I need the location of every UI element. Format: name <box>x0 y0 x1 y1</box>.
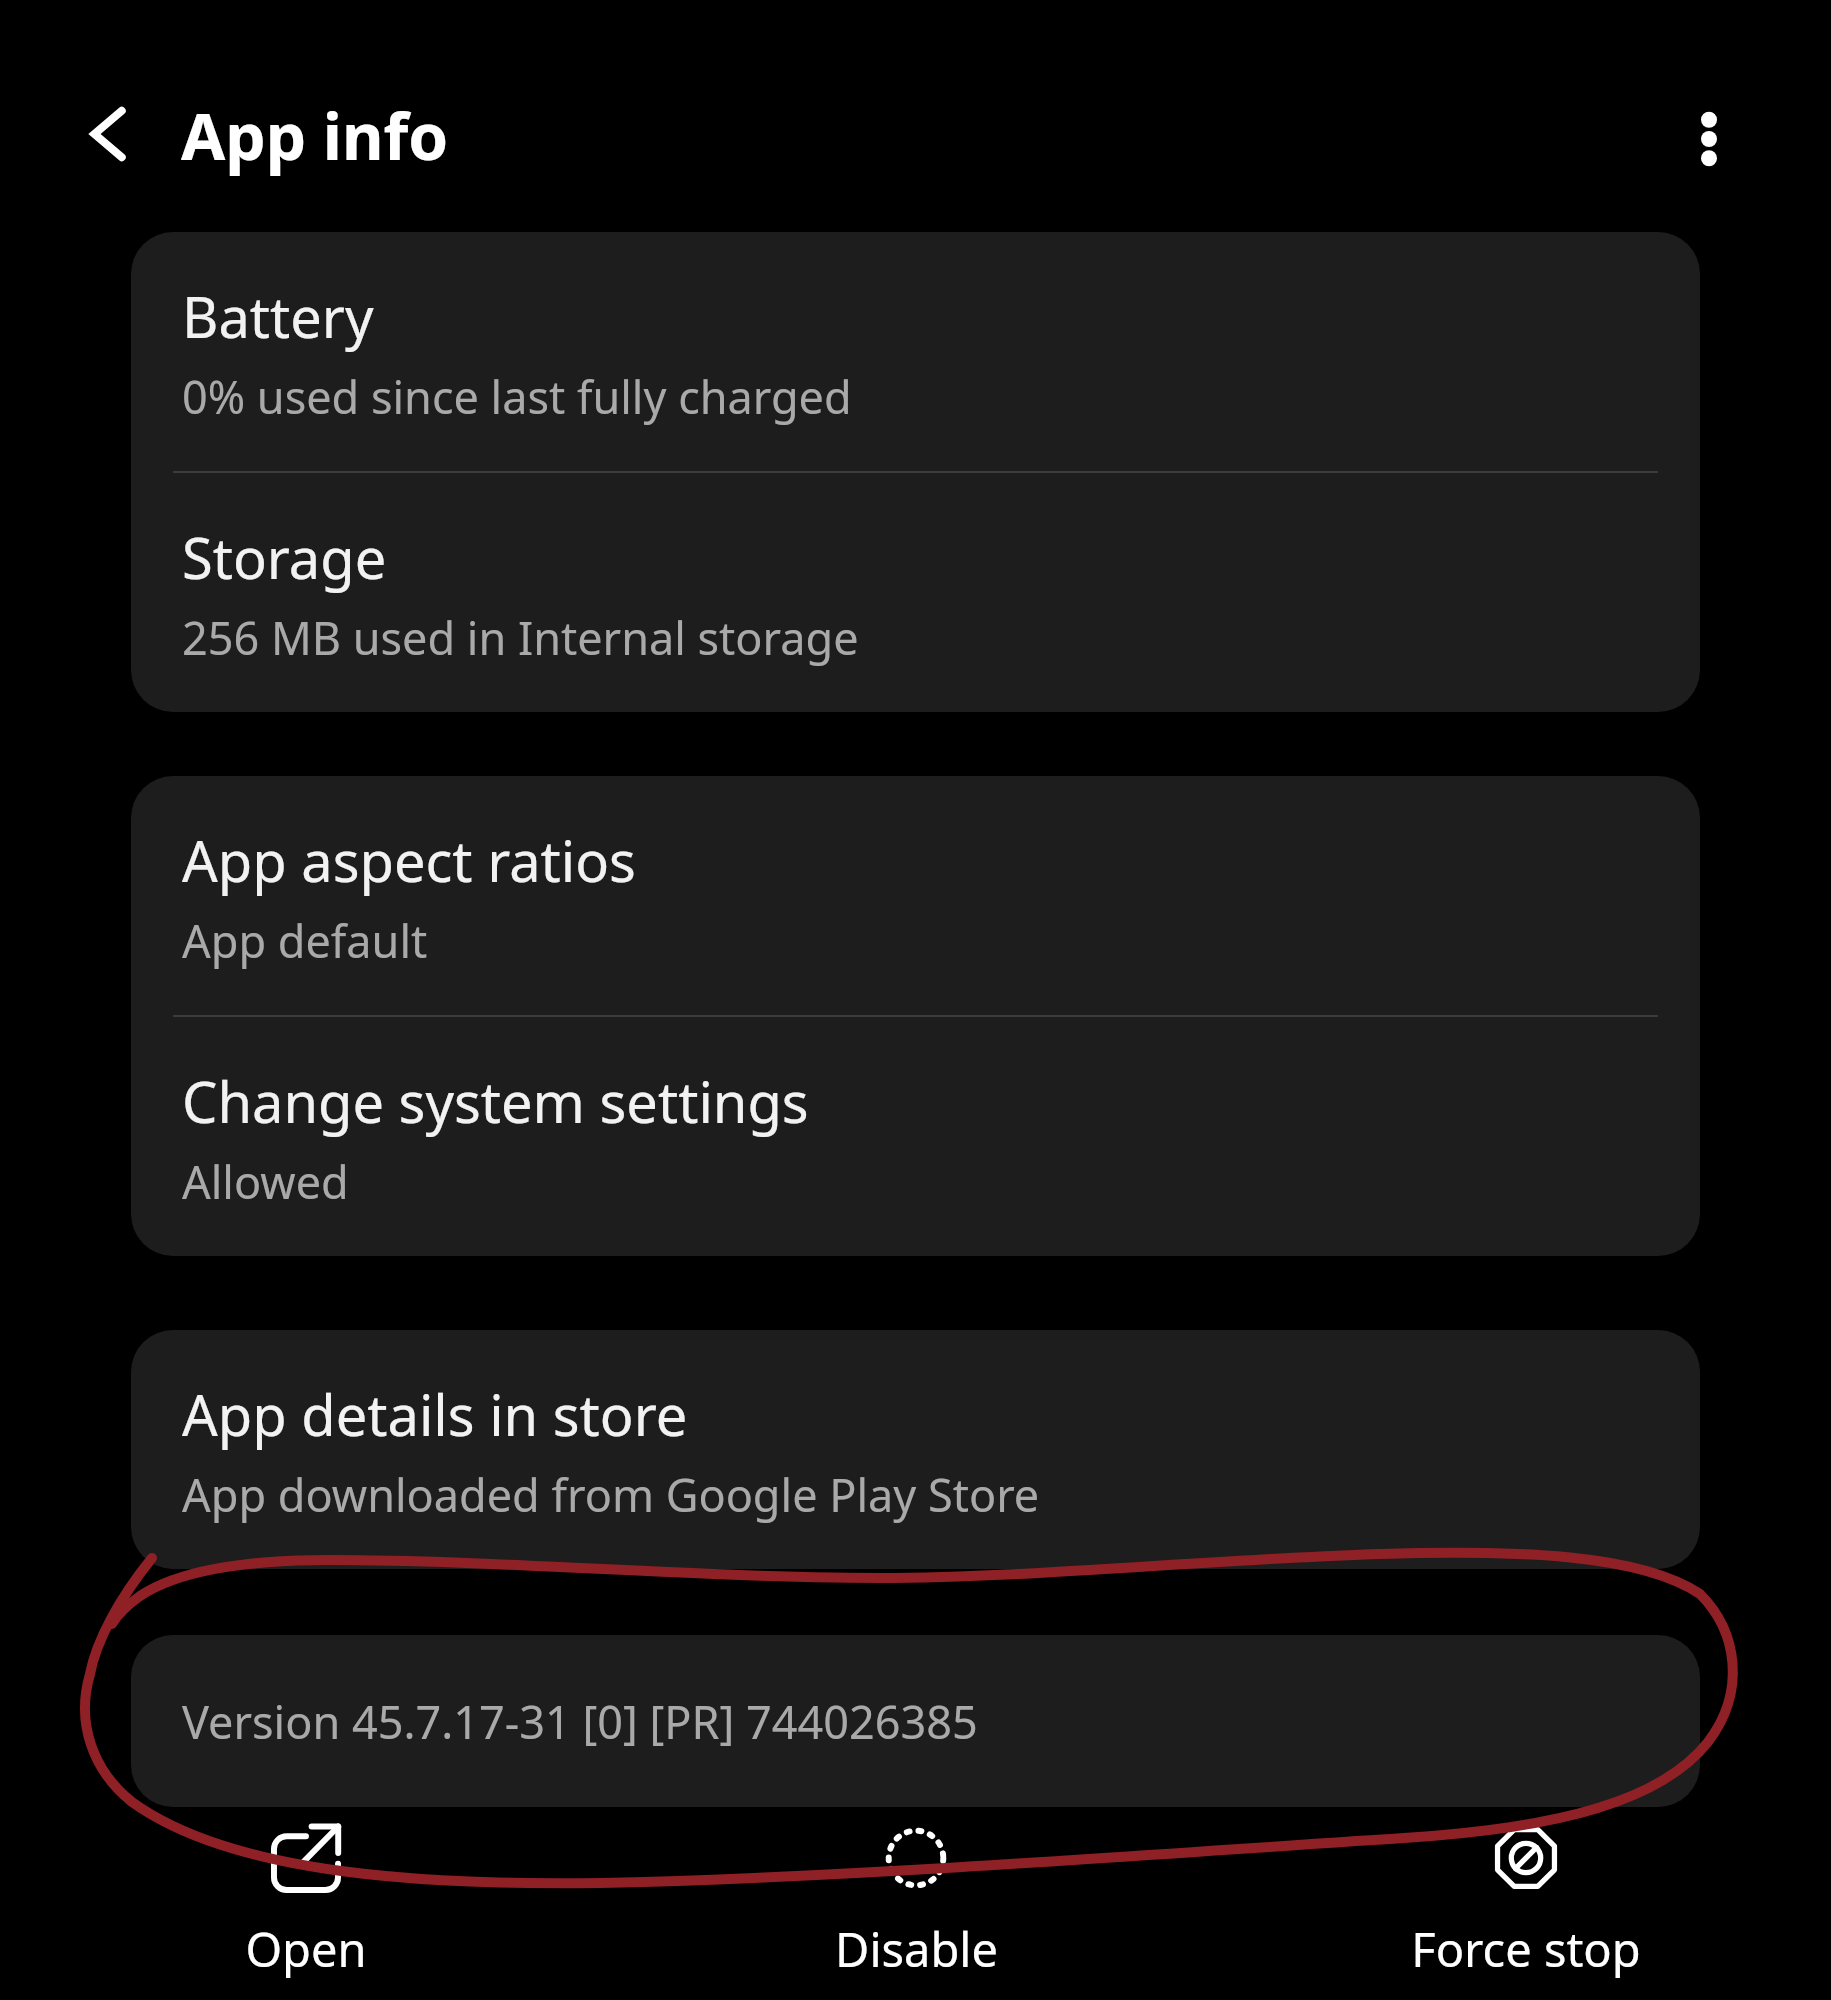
button[interactable]: Back <box>55 80 163 188</box>
staticText: App default <box>182 910 428 971</box>
button[interactable]: Storage <box>131 473 1700 712</box>
staticText: Change system settings <box>182 1063 809 1139</box>
button[interactable]: Force stop <box>1221 1807 1831 1981</box>
button[interactable]: Change system settings <box>131 1017 1700 1256</box>
staticText: App downloaded from Google Play Store <box>182 1464 1040 1525</box>
button[interactable]: Disable <box>611 1807 1221 1981</box>
staticText: Battery <box>182 278 374 354</box>
button[interactable]: App details in store <box>131 1330 1700 1569</box>
button[interactable]: Battery <box>131 232 1700 471</box>
button[interactable]: Open <box>0 1807 611 1981</box>
staticText: Storage <box>182 519 387 595</box>
staticText: App details in store <box>182 1376 688 1452</box>
staticText: 256 MB used in Internal storage <box>182 607 859 668</box>
staticText: Allowed <box>182 1151 349 1212</box>
staticText: App info <box>181 92 449 179</box>
staticText: 0% used since last fully charged <box>182 366 852 427</box>
staticText: Open <box>245 1917 367 1981</box>
button[interactable]: Version 45.7.17-31 [0] [PR] 744026385 <box>131 1635 1700 1807</box>
staticText: Disable <box>835 1917 998 1981</box>
staticText: App aspect ratios <box>182 822 636 898</box>
button[interactable]: More options <box>1650 80 1768 198</box>
button[interactable]: App aspect ratios <box>131 776 1700 1015</box>
staticText: Version 45.7.17-31 [0] [PR] 744026385 <box>182 1691 978 1752</box>
staticText: Force stop <box>1411 1917 1641 1981</box>
